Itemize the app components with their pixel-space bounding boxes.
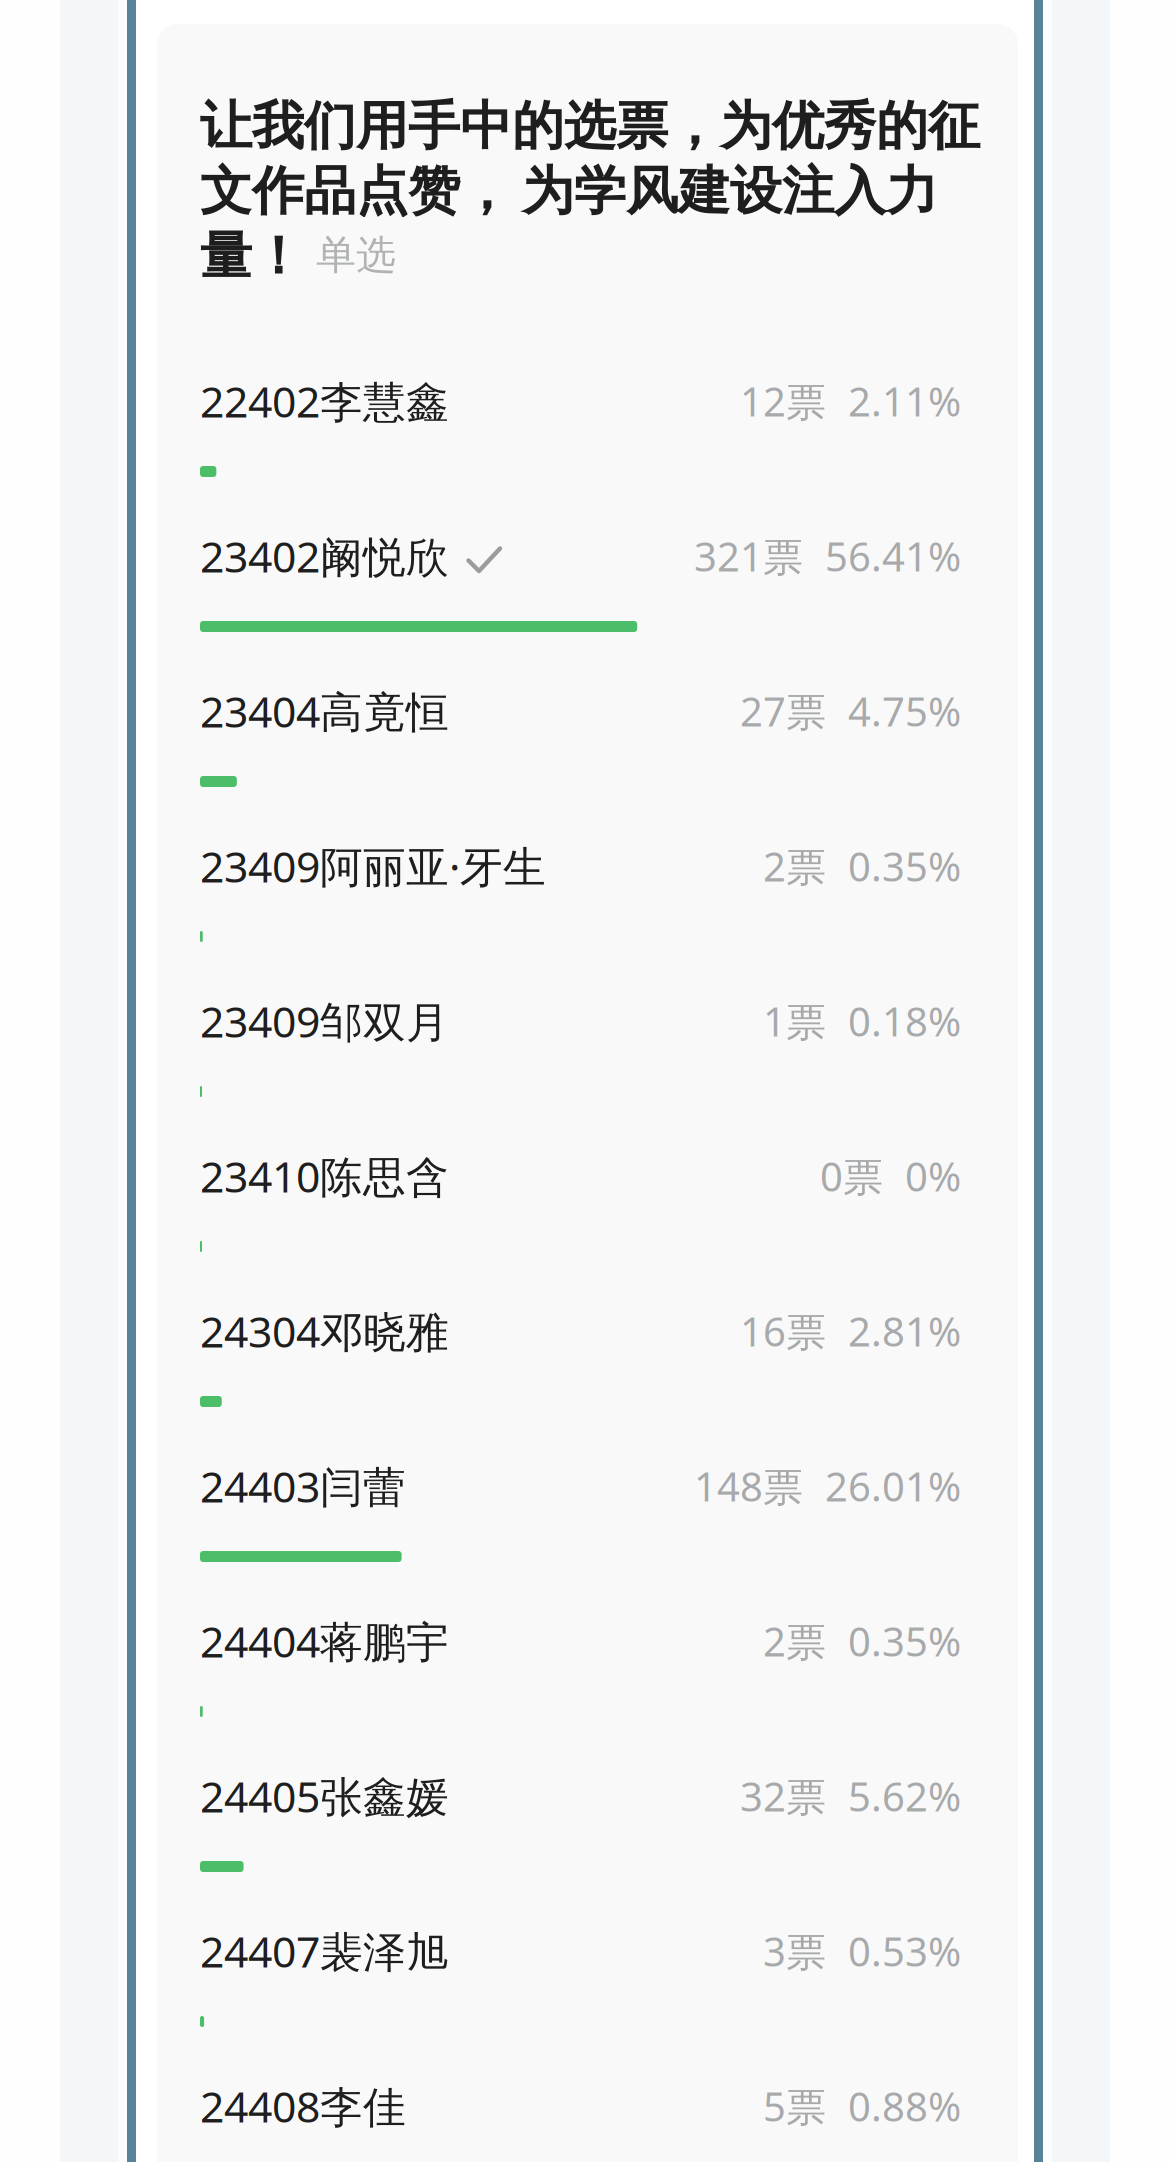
button[interactable]: 23410陈思含	[200, 1124, 975, 1279]
staticText: 26.01%	[825, 1459, 961, 1512]
staticText: 让我们用手中的选票，为优秀的征	[200, 94, 980, 158]
staticText: 0.53%	[848, 1924, 961, 1977]
button[interactable]: 24304邓晓雅	[200, 1279, 975, 1434]
staticText: 24408李佳	[200, 2078, 406, 2134]
staticText: 23409邹双月	[200, 993, 449, 1049]
staticText: 3票	[763, 1924, 826, 1977]
button[interactable]: 24404蒋鹏宇	[200, 1589, 975, 1744]
staticText: 5.62%	[848, 1769, 961, 1822]
staticText: 27票	[740, 684, 826, 737]
button[interactable]: 22402李慧鑫	[200, 349, 975, 504]
staticText: 23409阿丽亚·牙生	[200, 838, 546, 894]
staticText: 24405张鑫媛	[200, 1768, 449, 1824]
staticText: 0.35%	[848, 839, 961, 892]
button[interactable]: 23404高竟恒	[200, 659, 975, 814]
staticText: 4.75%	[848, 684, 961, 737]
staticText: 321票	[694, 529, 803, 582]
staticText: 16票	[740, 1304, 826, 1357]
staticText: 2.81%	[848, 1304, 961, 1357]
staticText: 2.11%	[848, 374, 961, 427]
staticText: 56.41%	[825, 529, 961, 582]
staticText: 12票	[740, 374, 826, 427]
staticText: 148票	[694, 1459, 803, 1512]
staticText: 0%	[905, 1149, 961, 1202]
button[interactable]: 24408李佳	[200, 2054, 975, 2162]
staticText: 23404高竟恒	[200, 683, 449, 739]
staticText: 2票	[763, 1614, 826, 1667]
staticText: 0.88%	[848, 2079, 961, 2132]
staticText: 文作品点赞， 为学风建设注入力	[200, 159, 938, 223]
staticText: 22402李慧鑫	[200, 373, 449, 429]
staticText: 23410陈思含	[200, 1148, 449, 1204]
staticText: 24403闫蕾	[200, 1458, 406, 1514]
staticText: 0.35%	[848, 1614, 961, 1667]
staticText: 2票	[763, 839, 826, 892]
staticText: 24304邓晓雅	[200, 1303, 449, 1359]
button[interactable]: 24403闫蕾	[200, 1434, 975, 1589]
staticText: 5票	[763, 2079, 826, 2132]
button[interactable]: 23402阚悦欣	[200, 504, 975, 659]
staticText: 0票	[820, 1149, 883, 1202]
staticText: 量！	[200, 224, 304, 288]
staticText: 1票	[763, 994, 826, 1047]
button[interactable]: 23409邹双月	[200, 969, 975, 1124]
staticText: 23402阚悦欣	[200, 528, 449, 584]
button[interactable]: 24407裴泽旭	[200, 1899, 975, 2054]
staticText: 32票	[740, 1769, 826, 1822]
staticText: 24407裴泽旭	[200, 1923, 449, 1979]
button[interactable]: 24405张鑫媛	[200, 1744, 975, 1899]
staticText: 单选	[316, 230, 396, 280]
staticText: 24404蒋鹏宇	[200, 1613, 449, 1669]
staticText: 0.18%	[848, 994, 961, 1047]
button[interactable]: 23409阿丽亚·牙生	[200, 814, 975, 969]
